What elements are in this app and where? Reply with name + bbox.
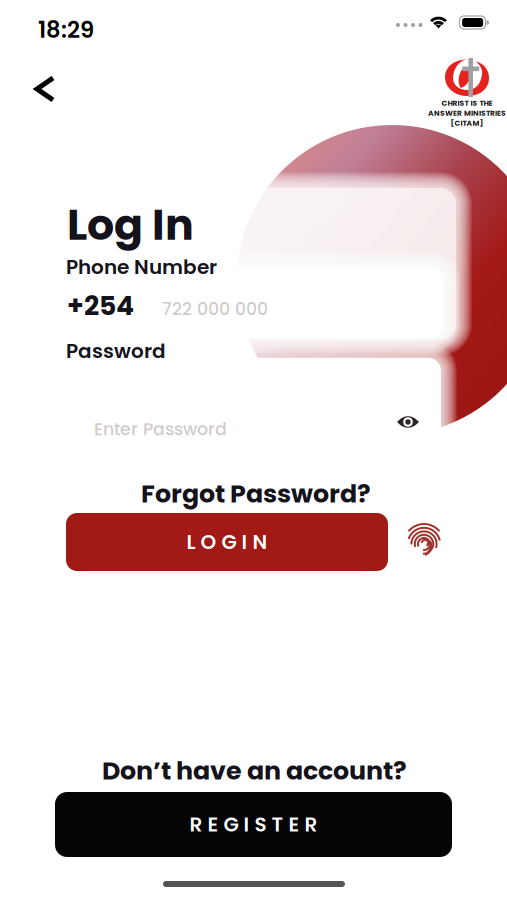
staticText: CHRIST IS THE [441,98,492,108]
staticText: [CITAM] [450,118,483,128]
staticText: R E G I S T E R [189,810,317,838]
button[interactable]: R E G I S T E R [55,792,452,857]
staticText: +254 [67,287,134,324]
staticText: Phone Number [66,253,217,281]
staticText: Forgot Password? [141,476,371,511]
staticText: Enter Password [94,417,227,441]
staticText: 18:29 [38,14,94,46]
staticText: ANSWER MINISTRIES [428,108,506,118]
staticText: Password [66,337,166,365]
staticText: Don’t have an account? [102,753,407,788]
button[interactable]: L O G I N [66,513,388,571]
staticText: 722 000 000 [162,297,268,321]
staticText: Log In [67,195,194,255]
button[interactable]: Sign in with fingerprint [403,519,446,563]
button[interactable]: Back [23,64,68,115]
button[interactable]: Forgot Password? [129,468,383,519]
staticText: L O G I N [186,528,267,556]
button[interactable]: Show password [387,404,429,440]
